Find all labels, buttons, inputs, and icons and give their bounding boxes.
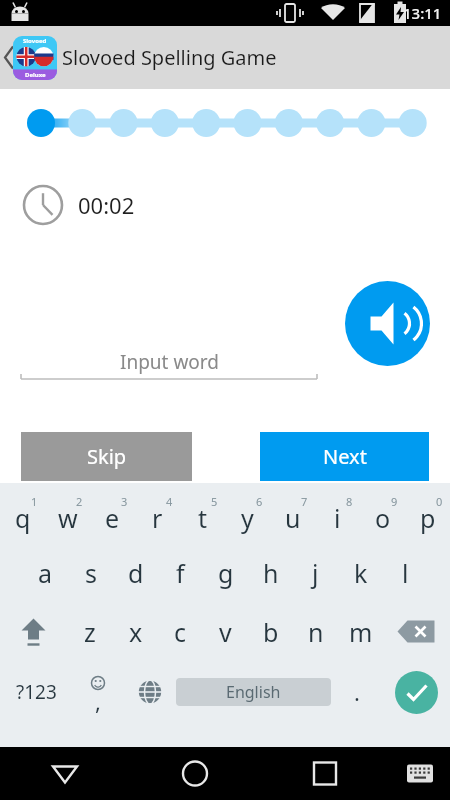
button[interactable]: y: [225, 485, 270, 543]
staticText: 4: [166, 494, 173, 509]
button[interactable]: m: [338, 602, 383, 661]
staticText: Deluxe: [25, 71, 46, 79]
staticText: 0: [436, 494, 443, 509]
button[interactable]: Recent apps: [260, 747, 390, 800]
staticText: m: [349, 615, 373, 649]
staticText: Skip: [87, 443, 127, 470]
button[interactable]: .: [331, 661, 383, 723]
button[interactable]: Keyboard: [390, 747, 450, 800]
button[interactable]: z: [67, 602, 113, 661]
staticText: ?123: [16, 679, 57, 705]
staticText: English: [226, 681, 281, 703]
button[interactable]: x: [113, 602, 158, 661]
staticText: 2: [76, 494, 83, 509]
staticText: 6: [256, 494, 263, 509]
staticText: r: [152, 501, 163, 535]
button[interactable]: a: [22, 543, 68, 602]
button[interactable]: ?123: [0, 661, 72, 723]
button[interactable]: Home: [130, 747, 260, 800]
button[interactable]: q: [0, 485, 45, 543]
button[interactable]: Input word: [21, 344, 317, 380]
button[interactable]: v: [203, 602, 248, 661]
staticText: g: [218, 556, 234, 590]
button[interactable]: s: [68, 543, 113, 602]
staticText: u: [285, 501, 301, 535]
staticText: i: [334, 501, 341, 535]
button[interactable]: k: [338, 543, 383, 602]
staticText: Slovoed Spelling Game: [62, 44, 277, 71]
button[interactable]: r: [135, 485, 180, 543]
staticText: z: [84, 615, 96, 649]
button[interactable]: Next: [260, 432, 429, 481]
button[interactable]: Change language: [124, 661, 176, 723]
staticText: 7: [301, 494, 308, 509]
button[interactable]: h: [248, 543, 293, 602]
button[interactable]: Shift: [0, 602, 67, 661]
staticText: Input word: [120, 349, 219, 375]
staticText: a: [38, 556, 53, 590]
staticText: o: [375, 501, 391, 535]
button[interactable]: l: [383, 543, 428, 602]
staticText: t: [198, 501, 208, 535]
staticText: f: [176, 556, 185, 590]
staticText: .: [354, 677, 360, 707]
button[interactable]: Done: [395, 671, 438, 714]
button[interactable]: Comma and emoji: [72, 661, 124, 723]
staticText: Next: [323, 443, 367, 470]
button[interactable]: e: [90, 485, 135, 543]
staticText: y: [241, 501, 254, 535]
staticText: n: [308, 615, 324, 649]
button[interactable]: Play sound: [345, 281, 430, 366]
button[interactable]: w: [45, 485, 90, 543]
button[interactable]: Navigate up: [0, 26, 62, 89]
button[interactable]: Backspace: [383, 602, 450, 661]
staticText: k: [354, 556, 368, 590]
staticText: 13:11: [403, 3, 442, 23]
staticText: h: [263, 556, 279, 590]
staticText: q: [15, 501, 31, 535]
button[interactable]: c: [158, 602, 203, 661]
staticText: ,: [95, 686, 101, 716]
staticText: e: [105, 501, 120, 535]
staticText: l: [402, 556, 409, 590]
staticText: 5: [211, 494, 218, 509]
button[interactable]: t: [180, 485, 225, 543]
staticText: w: [58, 501, 78, 535]
button[interactable]: n: [293, 602, 338, 661]
staticText: x: [129, 615, 143, 649]
staticText: 1: [31, 494, 38, 509]
button[interactable]: b: [248, 602, 293, 661]
staticText: j: [312, 556, 319, 590]
staticText: d: [128, 556, 144, 590]
button[interactable]: o: [360, 485, 405, 543]
button[interactable]: English: [176, 678, 331, 706]
button[interactable]: g: [203, 543, 248, 602]
staticText: 8: [346, 494, 353, 509]
button[interactable]: j: [293, 543, 338, 602]
staticText: v: [219, 615, 232, 649]
staticText: c: [174, 615, 187, 649]
staticText: b: [263, 615, 279, 649]
staticText: p: [420, 501, 436, 535]
staticText: 3: [121, 494, 128, 509]
button[interactable]: Back: [0, 747, 130, 800]
button[interactable]: f: [158, 543, 203, 602]
staticText: 00:02: [78, 190, 135, 220]
button[interactable]: p: [405, 485, 450, 543]
staticText: Slovoed: [23, 37, 47, 45]
staticText: s: [85, 556, 97, 590]
button[interactable]: i: [315, 485, 360, 543]
button[interactable]: d: [113, 543, 158, 602]
staticText: 9: [391, 494, 398, 509]
button[interactable]: Skip: [21, 432, 192, 481]
button[interactable]: u: [270, 485, 315, 543]
